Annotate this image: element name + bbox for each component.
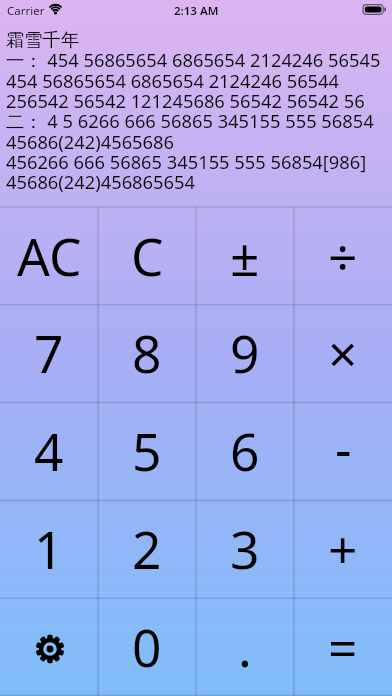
- staticText: ×: [328, 318, 358, 388]
- button[interactable]: 5: [98, 402, 196, 500]
- staticText: =: [328, 612, 358, 682]
- button[interactable]: .: [196, 598, 294, 696]
- staticText: 1: [34, 514, 64, 584]
- button[interactable]: 2: [98, 500, 196, 598]
- staticText: 6: [230, 416, 260, 486]
- staticText: 2:13 AM: [174, 3, 219, 19]
- staticText: ÷: [328, 221, 358, 291]
- staticText: ±: [230, 221, 260, 291]
- staticText: 2: [132, 514, 162, 584]
- staticText: +: [328, 514, 358, 584]
- staticText: -: [335, 413, 352, 483]
- staticText: C: [131, 221, 164, 291]
- button[interactable]: ÷: [294, 207, 392, 304]
- button[interactable]: 4: [0, 402, 98, 500]
- button[interactable]: ×: [294, 304, 392, 402]
- staticText: 9: [230, 318, 260, 388]
- button[interactable]: -: [294, 402, 392, 500]
- button[interactable]: 3: [196, 500, 294, 598]
- button[interactable]: AC: [0, 207, 98, 304]
- staticText: .: [238, 612, 252, 682]
- staticText: 5: [132, 416, 162, 486]
- button[interactable]: ±: [196, 207, 294, 304]
- button[interactable]: 0: [98, 598, 196, 696]
- staticText: 7: [34, 318, 64, 388]
- staticText: 霜雪千年 一： 454 56865654 6865654 2124246 565…: [6, 28, 381, 194]
- staticText: 4: [34, 416, 64, 486]
- button[interactable]: 8: [98, 304, 196, 402]
- staticText: Carrier: [7, 3, 45, 19]
- button[interactable]: 1: [0, 500, 98, 598]
- button[interactable]: =: [294, 598, 392, 696]
- button[interactable]: [0, 598, 98, 696]
- button[interactable]: 7: [0, 304, 98, 402]
- staticText: 0: [132, 612, 162, 682]
- button[interactable]: +: [294, 500, 392, 598]
- staticText: AC: [17, 221, 82, 291]
- staticText: 3: [230, 514, 260, 584]
- button[interactable]: 6: [196, 402, 294, 500]
- staticText: 8: [132, 318, 162, 388]
- button[interactable]: C: [98, 207, 196, 304]
- button[interactable]: 9: [196, 304, 294, 402]
